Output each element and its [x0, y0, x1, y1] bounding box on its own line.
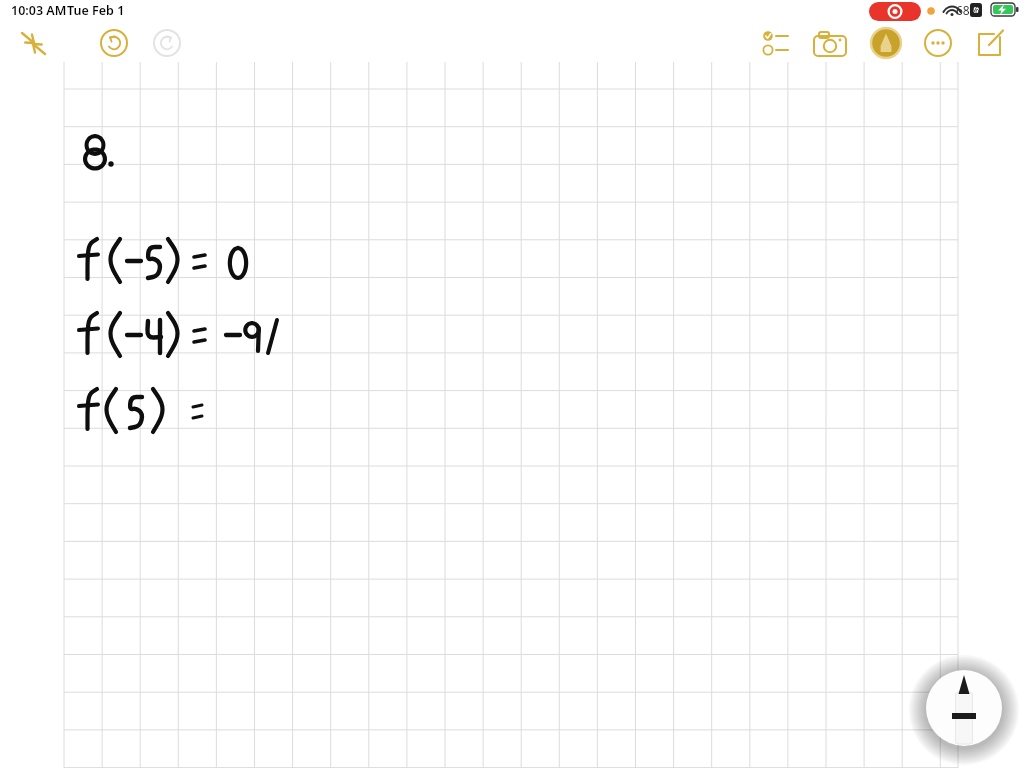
button[interactable]: Collapse	[12, 26, 54, 60]
button[interactable]: Camera	[812, 26, 848, 60]
staticText: 68%	[956, 2, 980, 18]
button[interactable]: Checklist	[757, 26, 793, 60]
button[interactable]: More options	[920, 26, 956, 60]
button[interactable]: New note	[973, 25, 1009, 61]
button[interactable]: Undo	[97, 26, 131, 60]
staticText: 10:03 AM	[11, 2, 67, 19]
staticText: Tue Feb 1	[67, 2, 125, 19]
button[interactable]: Stylus tool	[926, 670, 1002, 746]
button[interactable]: Redo	[150, 26, 184, 60]
button[interactable]: Pen tool	[868, 25, 904, 61]
